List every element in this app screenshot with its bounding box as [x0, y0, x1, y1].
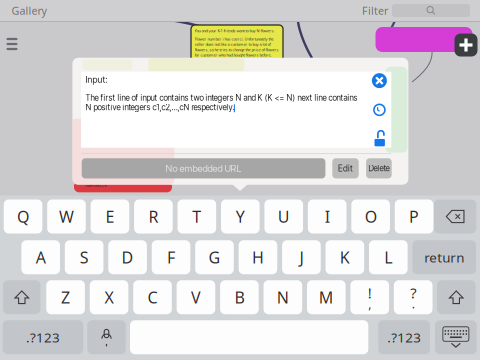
staticText: X	[104, 287, 113, 308]
button[interactable]: Dictation	[87, 320, 126, 354]
button[interactable]: Menu	[4, 36, 20, 52]
staticText: Edit	[338, 163, 353, 173]
staticText: .?123	[26, 328, 60, 346]
button[interactable]: L	[369, 240, 408, 274]
button[interactable]: H	[239, 240, 277, 274]
button[interactable]: Edit	[332, 158, 359, 178]
button[interactable]: Z	[46, 280, 85, 314]
button[interactable]: Untitled card	[375, 27, 472, 52]
staticText: ?	[410, 283, 416, 302]
staticText: F	[167, 247, 175, 268]
staticText: C	[147, 287, 157, 308]
staticText: T	[192, 206, 201, 227]
staticText: B	[234, 287, 244, 308]
staticText: .?123	[387, 328, 421, 346]
button[interactable]: Delete	[366, 158, 392, 178]
button[interactable]: Search	[392, 4, 470, 17]
button[interactable]: N	[264, 280, 302, 314]
staticText: U	[278, 206, 290, 227]
button[interactable]: Close	[372, 73, 387, 88]
button[interactable]: Code card	[74, 181, 172, 192]
staticText: S	[80, 247, 89, 268]
button[interactable]: U	[264, 199, 303, 233]
button[interactable]: ?	[394, 280, 432, 314]
button[interactable]: R	[134, 199, 173, 233]
button[interactable]: E	[91, 199, 129, 233]
staticText: G	[208, 247, 220, 268]
staticText: .	[412, 296, 415, 312]
button[interactable]: Gallery	[11, 3, 46, 18]
staticText: Flower number i has cost ci. Unfortunate…	[194, 36, 278, 57]
staticText: J	[299, 247, 303, 268]
staticText: Gallery	[11, 3, 46, 18]
staticText: return	[424, 248, 464, 266]
button[interactable]: Y	[221, 199, 260, 233]
staticText: Filter	[362, 3, 388, 18]
staticText: I	[325, 206, 330, 227]
button[interactable]: M	[307, 280, 346, 314]
button[interactable]: I	[308, 199, 346, 233]
staticText: E	[105, 206, 114, 227]
button[interactable]: G	[195, 240, 234, 274]
button[interactable]: Unlock	[373, 132, 386, 147]
staticText: Q	[17, 206, 29, 227]
staticText: sum=list + k	[85, 183, 106, 188]
button[interactable]: return	[412, 240, 476, 274]
staticText: D	[122, 247, 134, 268]
staticText: A	[36, 247, 46, 268]
staticText: O	[365, 206, 377, 227]
staticText: Z	[61, 287, 70, 308]
staticText: N	[277, 287, 289, 308]
staticText: M	[319, 287, 334, 308]
button[interactable]: F	[152, 240, 190, 274]
staticText: R	[148, 206, 158, 227]
staticText: Delete	[368, 163, 389, 173]
button[interactable]: Add card	[454, 33, 477, 56]
button[interactable]: Version history	[373, 104, 385, 116]
staticText: !	[368, 283, 372, 302]
button[interactable]: .?123	[3, 320, 83, 354]
staticText: Input:	[85, 74, 107, 85]
staticText: W	[59, 206, 74, 227]
button[interactable]: Backspace	[434, 199, 476, 233]
button[interactable]: Hide keyboard	[435, 320, 477, 354]
staticText: No embedded URL	[166, 163, 242, 174]
staticText: ,	[368, 296, 371, 312]
button[interactable]: B	[220, 280, 259, 314]
button[interactable]: W	[47, 199, 86, 233]
staticText: Y	[236, 206, 245, 227]
button[interactable]: !	[350, 280, 389, 314]
button[interactable]: P	[395, 199, 433, 233]
button[interactable]: No embedded URL	[82, 158, 325, 178]
button[interactable]: V	[177, 280, 215, 314]
button[interactable]: Q	[4, 199, 42, 233]
staticText: H	[252, 247, 264, 268]
button[interactable]: Shift	[3, 280, 40, 314]
button[interactable]: J	[282, 240, 321, 274]
button[interactable]: X	[90, 280, 128, 314]
button[interactable]: K	[326, 240, 364, 274]
staticText: The first line of input contains two int…	[85, 93, 357, 112]
staticText: You and your K-1 friends want to buy N f…	[194, 28, 274, 33]
button[interactable]: T	[178, 199, 216, 233]
button[interactable]: .?123	[378, 320, 430, 354]
staticText: V	[191, 287, 201, 308]
button[interactable]: Shift	[437, 280, 475, 314]
button[interactable]: C	[133, 280, 172, 314]
button[interactable]: S	[65, 240, 103, 274]
button[interactable]: A	[21, 240, 60, 274]
staticText: L	[384, 247, 392, 268]
staticText: P	[409, 206, 419, 227]
button[interactable]: O	[351, 199, 390, 233]
button[interactable]: D	[108, 240, 147, 274]
staticText: K	[340, 247, 350, 268]
